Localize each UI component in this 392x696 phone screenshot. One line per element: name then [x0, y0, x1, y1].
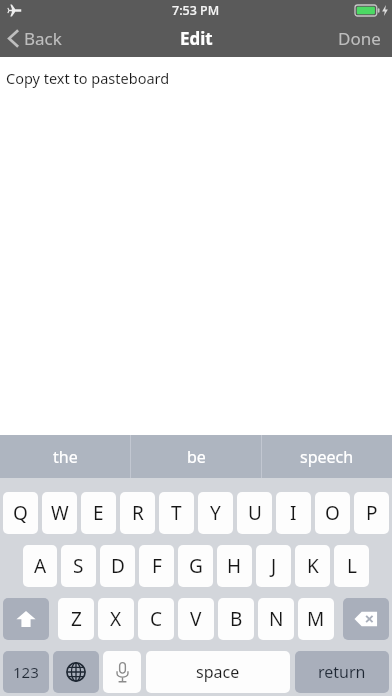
button[interactable]: T	[159, 492, 194, 534]
button[interactable]: speech	[262, 435, 392, 478]
button[interactable]: Next keyboard	[53, 651, 99, 693]
button[interactable]: I	[276, 492, 311, 534]
button[interactable]: K	[295, 545, 330, 587]
button[interactable]: W	[42, 492, 77, 534]
staticText: H	[227, 553, 242, 579]
staticText: F	[152, 553, 162, 579]
button[interactable]: D	[100, 545, 135, 587]
staticText: T	[171, 500, 182, 526]
staticText: R	[132, 500, 144, 526]
staticText: M	[307, 606, 325, 632]
button[interactable]: Q	[3, 492, 38, 534]
staticText: D	[111, 553, 125, 579]
staticText: V	[190, 606, 202, 632]
staticText: 7:53 PM	[172, 2, 220, 19]
button[interactable]: Y	[198, 492, 233, 534]
button[interactable]: C	[138, 598, 174, 640]
staticText: S	[73, 553, 84, 579]
staticText: N	[269, 606, 284, 632]
button[interactable]: Delete	[343, 598, 389, 640]
staticText: G	[189, 553, 203, 579]
button[interactable]: L	[334, 545, 369, 587]
button[interactable]: Shift	[3, 598, 49, 640]
staticText: the	[53, 446, 78, 468]
button[interactable]: Back	[0, 22, 74, 55]
staticText: E	[93, 500, 104, 526]
staticText: J	[271, 553, 277, 579]
button[interactable]: return	[295, 651, 389, 693]
staticText: A	[34, 553, 47, 579]
button[interactable]: be	[131, 435, 261, 478]
button[interactable]: N	[258, 598, 294, 640]
button[interactable]: the	[0, 435, 130, 478]
staticText: Back	[24, 27, 62, 50]
button[interactable]: H	[217, 545, 252, 587]
button[interactable]: space	[146, 651, 290, 693]
button[interactable]: Dictate	[103, 651, 141, 693]
staticText: be	[187, 446, 206, 468]
button[interactable]: R	[120, 492, 155, 534]
staticText: Done	[338, 27, 381, 50]
button[interactable]: M	[298, 598, 334, 640]
staticText: Copy text to pasteboard	[6, 68, 170, 88]
staticText: O	[325, 500, 340, 526]
staticText: return	[318, 661, 366, 683]
staticText: K	[307, 553, 319, 579]
staticText: U	[248, 500, 262, 526]
staticText: P	[366, 500, 378, 526]
button[interactable]: G	[178, 545, 213, 587]
button[interactable]: P	[354, 492, 389, 534]
staticText: C	[150, 606, 163, 632]
staticText: Y	[210, 500, 221, 526]
staticText: 123	[13, 662, 39, 682]
button[interactable]: O	[315, 492, 350, 534]
staticText: L	[347, 553, 357, 579]
button[interactable]: B	[218, 598, 254, 640]
staticText: speech	[300, 446, 354, 468]
button[interactable]: U	[237, 492, 272, 534]
button[interactable]: S	[61, 545, 96, 587]
button[interactable]: J	[256, 545, 291, 587]
button[interactable]: F	[139, 545, 174, 587]
staticText: Edit	[180, 27, 213, 50]
button[interactable]: V	[178, 598, 214, 640]
staticText: X	[110, 606, 122, 632]
button[interactable]: 123	[3, 651, 49, 693]
button[interactable]: E	[81, 492, 116, 534]
staticText: W	[51, 500, 69, 526]
staticText: space	[196, 661, 240, 683]
staticText: Z	[71, 606, 82, 632]
button[interactable]: A	[23, 545, 57, 587]
staticText: I	[290, 500, 297, 526]
button[interactable]: Done	[327, 20, 392, 57]
staticText: B	[230, 606, 243, 632]
button[interactable]: X	[98, 598, 134, 640]
button[interactable]: Z	[58, 598, 94, 640]
staticText: Q	[13, 500, 28, 526]
